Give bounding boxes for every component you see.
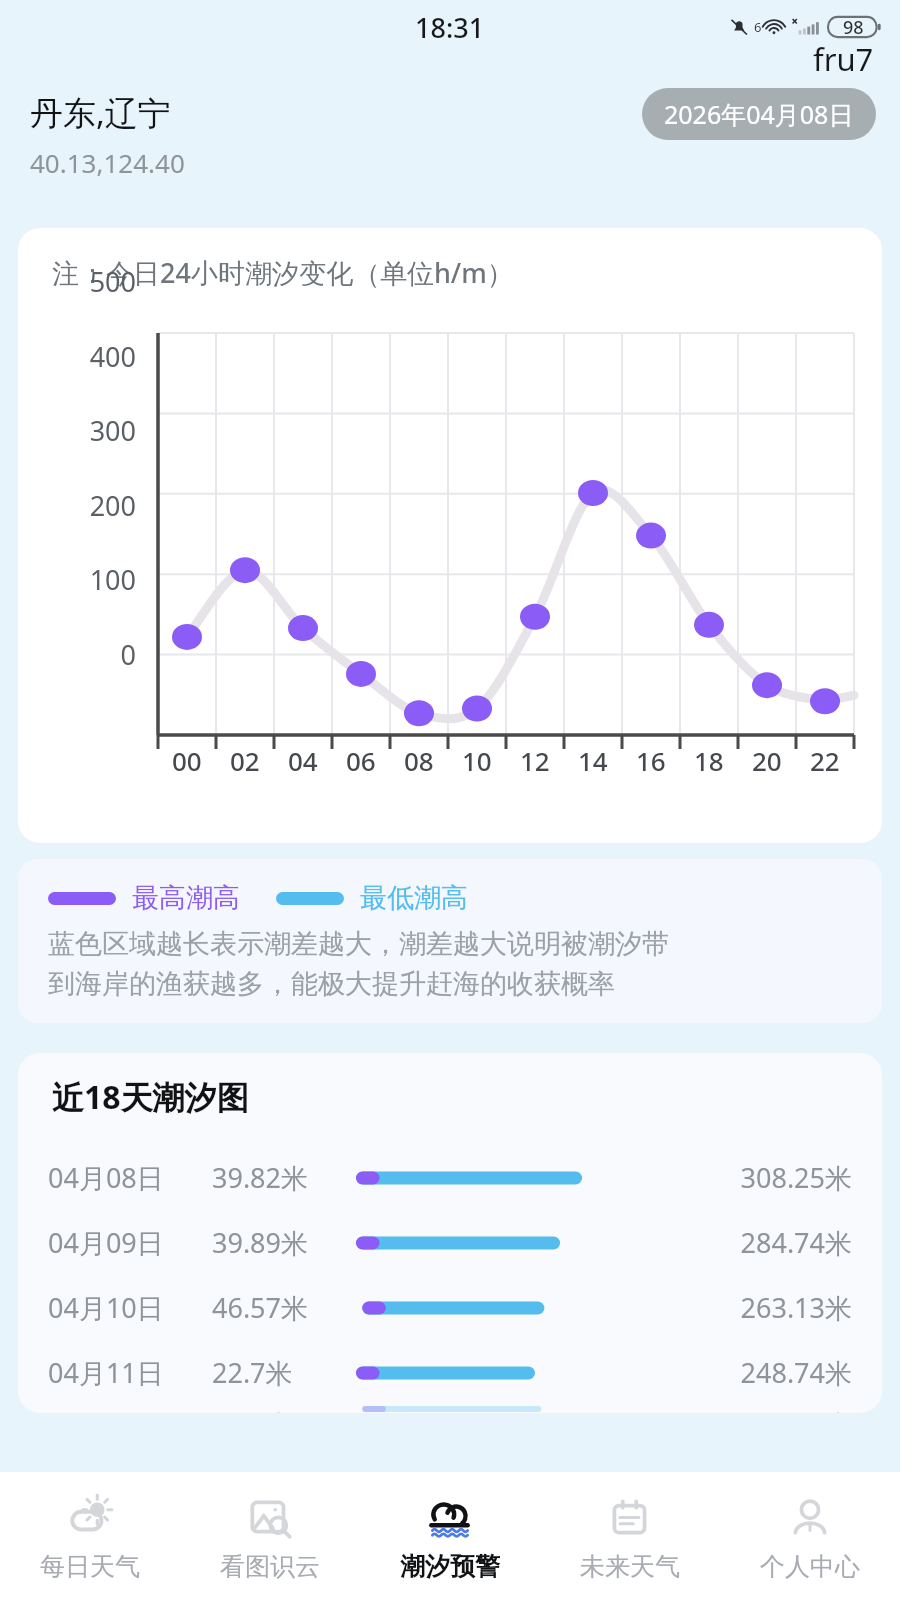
staticText: 39.89米 <box>212 1224 342 1261</box>
button[interactable]: 个人中心 <box>720 1483 900 1590</box>
staticText: 18 <box>694 743 724 778</box>
staticText: 丹东,辽宁 <box>30 90 171 135</box>
staticText: 近18天潮汐图 <box>52 1075 249 1119</box>
staticText: 39.82米 <box>212 1159 342 1196</box>
button[interactable]: 2026年04月08日 <box>642 88 876 140</box>
button[interactable]: 未来天气 <box>540 1483 720 1590</box>
staticText: 06 <box>346 743 376 778</box>
button[interactable]: 04月08日 <box>18 1145 882 1210</box>
staticText: 22.7米 <box>212 1354 342 1391</box>
staticText: 潮汐预警 <box>400 1551 500 1582</box>
staticText: 14 <box>578 743 608 778</box>
staticText: 看图识云 <box>220 1551 320 1582</box>
staticText: 98 <box>843 15 864 40</box>
staticText: 2026年04月08日 <box>664 97 854 131</box>
staticText: 200 <box>40 487 136 524</box>
staticText: 18:31 <box>415 9 485 46</box>
staticText: 个人中心 <box>760 1551 860 1582</box>
staticText: 22 <box>810 743 840 778</box>
staticText: 284.74米 <box>684 1224 852 1261</box>
staticText: 最高潮高 <box>132 881 240 915</box>
staticText: 16 <box>636 743 666 778</box>
staticText: 400 <box>40 338 136 375</box>
staticText: 04月08日 <box>48 1159 198 1196</box>
staticText: 6 <box>754 18 762 36</box>
staticText: fru7 <box>813 38 874 80</box>
staticText: 每日天气 <box>40 1551 140 1582</box>
staticText: 40.13,124.40 <box>30 145 185 180</box>
staticText: 08 <box>404 743 434 778</box>
staticText: 04月11日 <box>48 1354 198 1391</box>
staticText: 308.25米 <box>684 1159 852 1196</box>
staticText: 12 <box>520 743 550 778</box>
button[interactable]: 04月11日 <box>18 1340 882 1405</box>
staticText: 最低潮高 <box>360 881 468 915</box>
staticText: 20 <box>752 743 782 778</box>
staticText: 注：今日24小时潮汐变化（单位h/m） <box>52 254 514 291</box>
staticText: 263.13米 <box>684 1289 852 1326</box>
staticText: 248.74米 <box>684 1354 852 1391</box>
staticText: 02 <box>230 743 260 778</box>
staticText: 蓝色区域越长表示潮差越大，潮差越大说明被潮汐带 到海岸的渔获越多，能极大提升赶海… <box>48 927 669 1001</box>
button[interactable]: 04月09日 <box>18 1210 882 1275</box>
staticText: 04月10日 <box>48 1289 198 1326</box>
other: 潮汐预警 <box>424 1491 476 1543</box>
button[interactable]: 04月12日 <box>18 1405 882 1413</box>
staticText: 00 <box>172 743 202 778</box>
staticText: 未来天气 <box>580 1551 680 1582</box>
staticText: 10 <box>462 743 492 778</box>
staticText: 100 <box>40 561 136 598</box>
staticText: 04 <box>288 743 318 778</box>
staticText: 0 <box>40 636 136 673</box>
button[interactable]: 04月10日 <box>18 1275 882 1340</box>
staticText: 300 <box>40 412 136 449</box>
staticText: 46.57米 <box>212 1289 342 1326</box>
button[interactable]: 看图识云 <box>180 1483 360 1590</box>
staticText: 04月09日 <box>48 1224 198 1261</box>
button[interactable]: 每日天气 <box>0 1483 180 1590</box>
staticText: 500 <box>40 263 136 300</box>
button[interactable]: 潮汐预警 <box>360 1483 540 1590</box>
